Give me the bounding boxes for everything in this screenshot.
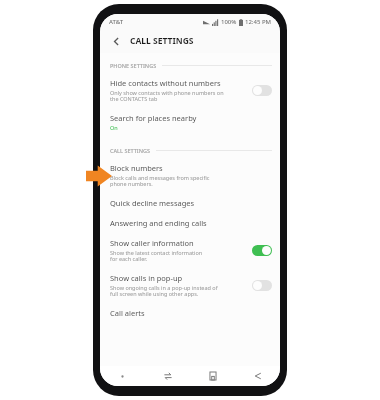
button[interactable]: Call alerts bbox=[100, 303, 280, 323]
staticText: Show caller information bbox=[110, 238, 194, 248]
button[interactable]: Show caller information bbox=[100, 233, 280, 268]
staticText: AT&T bbox=[109, 18, 124, 26]
staticText: Search for places nearby bbox=[110, 113, 197, 123]
button[interactable]: Toggle on bbox=[252, 245, 272, 256]
staticText: CALL SETTINGS bbox=[110, 147, 151, 154]
button[interactable]: Hide contacts without numbers bbox=[100, 73, 280, 108]
staticText: Show calls in pop-up bbox=[110, 273, 183, 283]
staticText: Hide contacts without numbers bbox=[110, 78, 221, 88]
staticText: Answering and ending calls bbox=[110, 218, 207, 228]
button[interactable]: Answering and ending calls bbox=[100, 213, 280, 233]
button[interactable]: Back bbox=[235, 366, 280, 386]
staticText: Show ongoing calls in a pop-up instead o… bbox=[110, 284, 218, 298]
other: Pointer arrow to Block numbers bbox=[86, 163, 112, 189]
staticText: On bbox=[110, 124, 118, 131]
staticText: Show the latest contact information for … bbox=[110, 249, 203, 263]
staticText: Call alerts bbox=[110, 308, 145, 318]
button[interactable]: Back bbox=[108, 33, 124, 49]
staticText: Quick decline messages bbox=[110, 198, 195, 208]
staticText: Block calls and messages from specific p… bbox=[110, 174, 210, 188]
button[interactable]: Block numbers bbox=[100, 158, 280, 193]
staticText: 12:45 PM bbox=[245, 18, 272, 26]
staticText: 100% bbox=[221, 18, 237, 26]
staticText: Block numbers bbox=[110, 163, 163, 173]
button[interactable]: Toggle off bbox=[252, 280, 272, 291]
button[interactable]: Menu dot bbox=[100, 366, 145, 386]
staticText: Only show contacts with phone numbers on… bbox=[110, 89, 224, 103]
button[interactable]: Search for places nearby bbox=[100, 108, 280, 136]
staticText: CALL SETTINGS bbox=[130, 35, 194, 47]
button[interactable]: Home bbox=[190, 366, 235, 386]
button[interactable]: Quick decline messages bbox=[100, 193, 280, 213]
staticText: PHONE SETTINGS bbox=[110, 62, 157, 69]
button[interactable]: Recents bbox=[145, 366, 190, 386]
button[interactable]: Show calls in pop-up bbox=[100, 268, 280, 303]
button[interactable]: Toggle off bbox=[252, 85, 272, 96]
